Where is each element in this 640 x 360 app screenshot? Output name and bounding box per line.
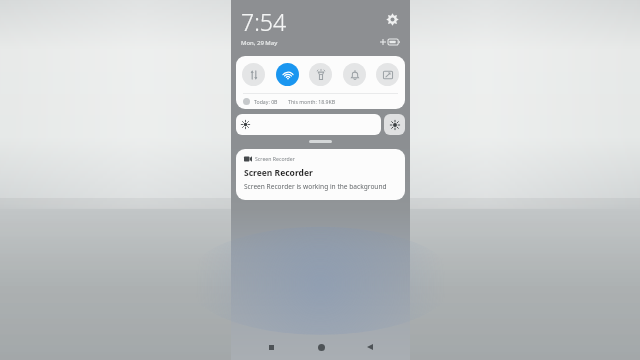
button[interactable]: Auto brightness bbox=[384, 114, 405, 135]
button[interactable]: Today: 0B bbox=[236, 94, 405, 109]
button[interactable]: Flashlight bbox=[309, 63, 332, 86]
staticText: This month: 18.9KB bbox=[288, 98, 336, 105]
staticText: Screen Recorder bbox=[244, 167, 313, 179]
staticText: Mon, 29 May bbox=[241, 39, 278, 47]
button[interactable]: Screen Recorder bbox=[236, 149, 405, 200]
button[interactable]: Brightness bbox=[236, 114, 381, 135]
button[interactable]: Wi-Fi bbox=[276, 63, 299, 86]
button[interactable]: Back bbox=[361, 338, 379, 356]
button[interactable]: Expand notifications bbox=[309, 140, 332, 143]
staticText: 7:54 bbox=[241, 6, 287, 37]
staticText: Screen Recorder is working in the backgr… bbox=[244, 182, 387, 191]
button[interactable]: Ringer bbox=[343, 63, 366, 86]
button[interactable]: Screenshot bbox=[376, 63, 399, 86]
button[interactable]: Recents bbox=[262, 338, 280, 356]
button[interactable]: Settings bbox=[386, 13, 399, 26]
staticText: Today: 0B bbox=[254, 98, 278, 105]
button[interactable]: Mobile data bbox=[242, 63, 265, 86]
staticText: Screen Recorder bbox=[255, 155, 295, 162]
button[interactable]: Home bbox=[312, 338, 330, 356]
